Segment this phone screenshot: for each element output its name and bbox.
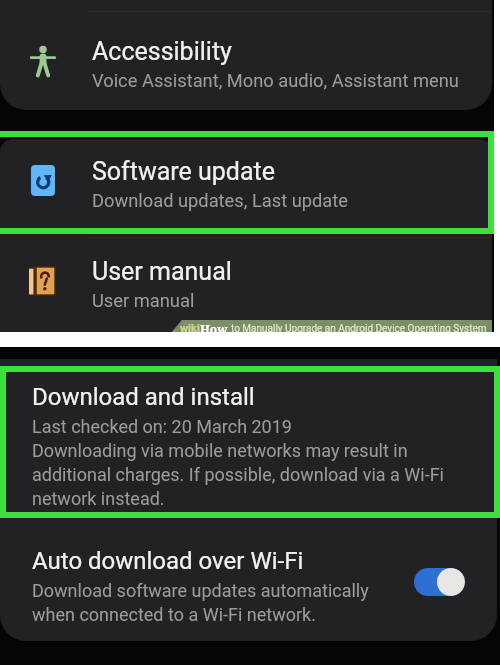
staticText: Download software updates automatically …: [32, 580, 369, 625]
staticText: Download updates, Last update: [92, 190, 348, 211]
button[interactable]: Auto download over Wi-Fi: [0, 541, 497, 631]
other: Accessibility: [30, 46, 56, 77]
staticText: Accessibility: [92, 37, 232, 66]
staticText: How: [200, 321, 231, 335]
staticText: User manual: [92, 290, 195, 311]
button[interactable]: Download and install: [0, 371, 497, 521]
staticText: Download and install: [32, 383, 255, 411]
other: Software update: [31, 165, 55, 196]
staticText: User manual: [92, 257, 232, 286]
staticText: to Manually Upgrade an Android Device Op…: [231, 323, 487, 335]
staticText: wiki: [180, 322, 200, 335]
staticText: Voice Assistant, Mono audio, Assistant m…: [92, 70, 459, 91]
staticText: Last checked on: 20 March 2019 Downloadi…: [32, 416, 444, 509]
button[interactable]: User manual: [0, 235, 492, 333]
button[interactable]: Auto download over Wi-Fi switch: [414, 568, 465, 596]
button[interactable]: Accessibility: [0, 15, 492, 113]
other: User manual: [29, 267, 55, 295]
button[interactable]: Software update: [0, 135, 492, 233]
staticText: Software update: [92, 157, 276, 186]
staticText: Auto download over Wi-Fi: [32, 547, 304, 575]
